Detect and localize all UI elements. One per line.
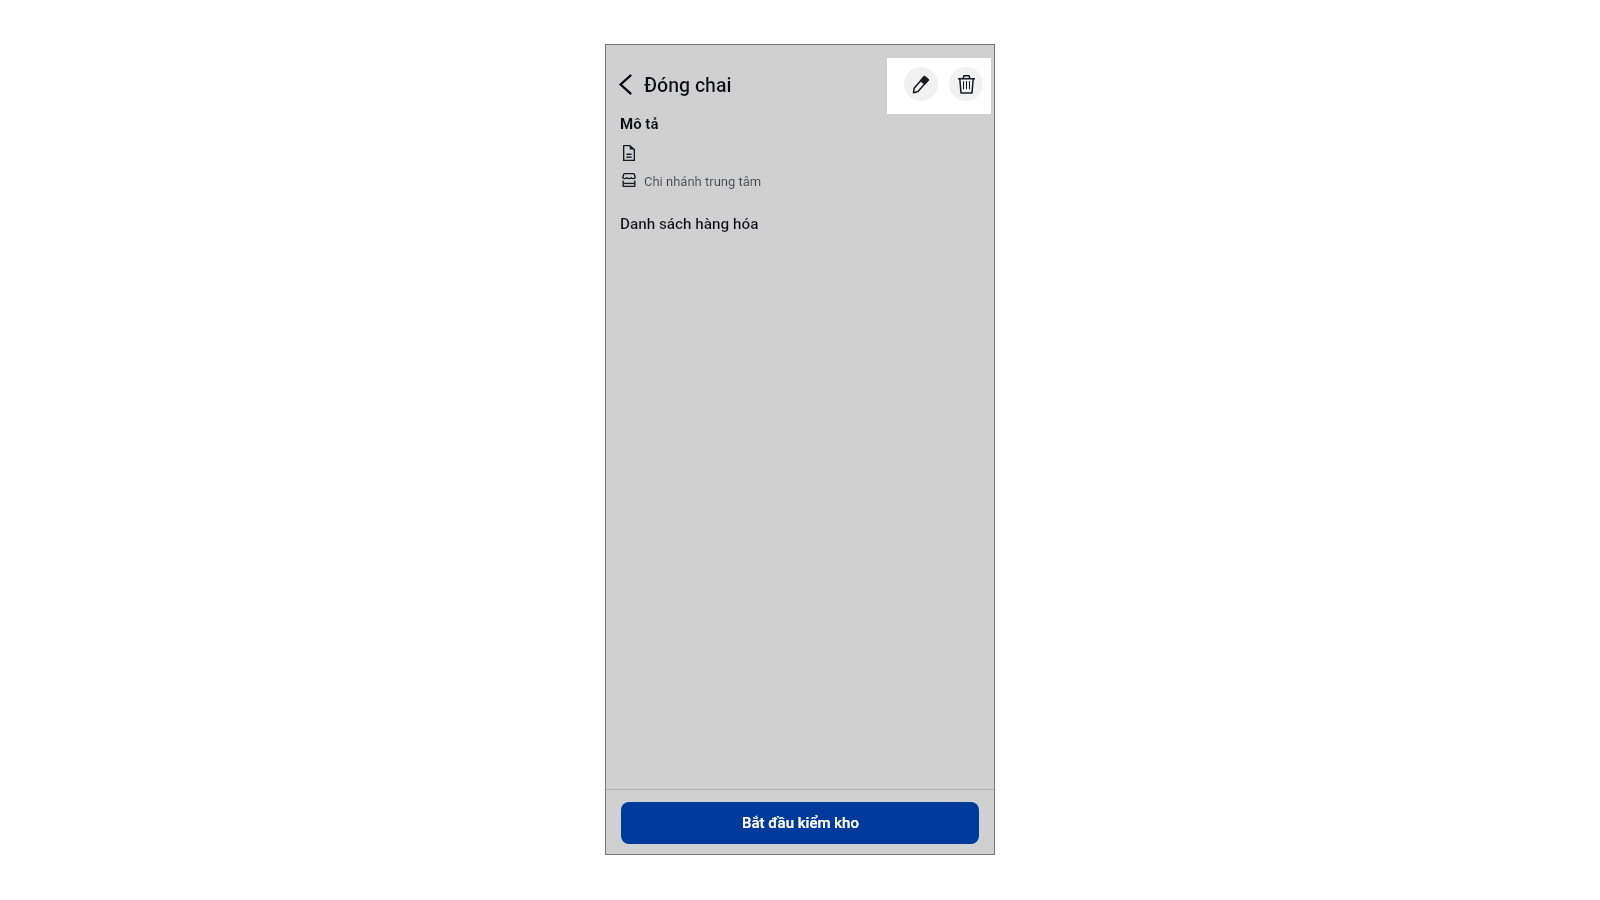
button[interactable]: Back [609,68,641,100]
button[interactable]: Bắt đầu kiểm kho [621,802,979,844]
button[interactable]: Edit [904,67,938,101]
button[interactable]: Delete [949,67,983,101]
staticText: Đóng chai [644,74,732,97]
staticText: Chi nhánh trung tâm [644,174,762,189]
staticText: Mô tả [620,115,659,133]
staticText: Bắt đầu kiểm kho [742,814,859,832]
staticText: Danh sách hàng hóa [620,215,759,233]
